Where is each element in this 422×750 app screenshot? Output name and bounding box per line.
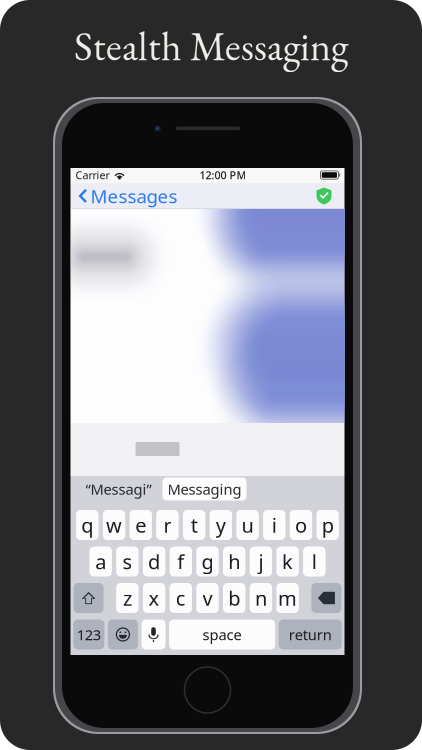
staticText: Carrier [75, 168, 109, 182]
staticText: b [228, 585, 240, 611]
staticText: Messaging [167, 479, 241, 499]
button[interactable]: f [170, 546, 192, 576]
button[interactable]: y [210, 510, 232, 540]
button[interactable]: t [183, 510, 205, 540]
button[interactable]: i [263, 510, 285, 540]
button[interactable]: space [169, 619, 275, 649]
button[interactable]: h [223, 546, 245, 576]
staticText: o [295, 512, 307, 538]
button[interactable]: Dictate [141, 619, 165, 649]
staticText: u [241, 512, 253, 538]
button[interactable]: v [196, 583, 219, 613]
button[interactable]: “Messagi” [74, 477, 162, 500]
staticText: l [312, 548, 317, 575]
staticText: n [255, 585, 267, 611]
button[interactable]: o [290, 510, 312, 540]
button[interactable]: x [143, 583, 165, 613]
staticText: i [272, 512, 277, 538]
staticText: d [148, 548, 160, 575]
staticText: j [258, 548, 263, 575]
staticText: g [201, 548, 213, 575]
staticText: 12:00 PM [199, 168, 246, 182]
button[interactable]: q [76, 510, 98, 540]
button[interactable]: k [276, 546, 299, 576]
staticText: e [135, 512, 146, 538]
button[interactable]: b [223, 583, 245, 613]
staticText: return [289, 625, 332, 644]
staticText: s [122, 548, 132, 575]
staticText: f [177, 548, 184, 575]
staticText: m [278, 585, 297, 611]
button[interactable]: l [303, 546, 325, 576]
button[interactable]: Delete [311, 583, 341, 613]
staticText: Stealth Messaging [74, 20, 348, 72]
button[interactable]: s [116, 546, 139, 576]
button[interactable]: Secure conversation [316, 184, 344, 207]
button[interactable]: Shift [74, 583, 104, 613]
button[interactable]: p [316, 510, 339, 540]
staticText: p [322, 512, 334, 538]
button[interactable]: u [236, 510, 259, 540]
staticText: c [176, 585, 186, 611]
button[interactable]: z [116, 583, 139, 613]
staticText: y [216, 512, 226, 538]
staticText: h [228, 548, 240, 575]
button[interactable]: c [170, 583, 192, 613]
staticText: r [163, 512, 171, 538]
staticText: space [203, 625, 242, 644]
button[interactable]: r [156, 510, 179, 540]
button[interactable]: w [103, 510, 125, 540]
staticText: w [106, 512, 122, 538]
staticText: q [81, 512, 93, 538]
button[interactable]: e [129, 510, 152, 540]
staticText: t [191, 512, 198, 538]
button[interactable]: Messaging [162, 477, 246, 500]
button[interactable]: m [276, 583, 299, 613]
staticText: z [123, 585, 132, 611]
button[interactable]: return [279, 619, 342, 649]
staticText: k [282, 548, 293, 575]
staticText: v [202, 585, 212, 611]
button[interactable]: n [250, 583, 272, 613]
button[interactable]: j [250, 546, 272, 576]
staticText: Messages [90, 184, 177, 208]
button[interactable]: 123 [73, 619, 104, 649]
button[interactable]: d [143, 546, 165, 576]
button[interactable]: Emoji [108, 619, 138, 649]
button[interactable]: a [89, 546, 112, 576]
staticText: x [149, 585, 160, 611]
staticText: a [95, 548, 106, 575]
button[interactable]: Messages [70, 179, 177, 213]
button[interactable]: g [196, 546, 219, 576]
staticText: “Messagi” [85, 479, 151, 499]
staticText: 123 [77, 625, 101, 644]
